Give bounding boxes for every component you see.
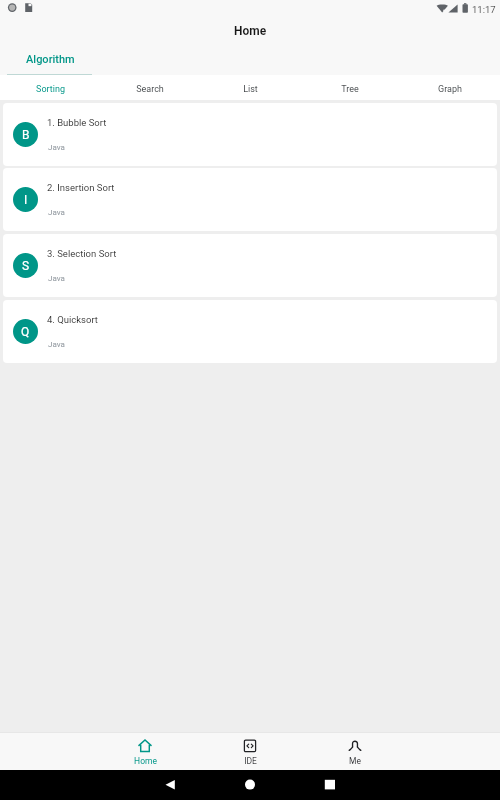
button[interactable]: Q: [3, 300, 497, 363]
staticText: Java: [48, 143, 65, 152]
staticText: Home: [134, 756, 157, 766]
staticText: Java: [48, 340, 65, 349]
staticText: 4. Quicksort: [47, 314, 98, 325]
staticText: Tree: [341, 84, 359, 95]
button[interactable]: Me: [327, 733, 383, 770]
staticText: Algorithm: [26, 53, 75, 66]
button[interactable]: Recent apps: [308, 770, 352, 800]
staticText: Java: [48, 208, 65, 217]
staticText: 2. Insertion Sort: [47, 182, 115, 193]
staticText: List: [243, 84, 258, 95]
staticText: Search: [136, 84, 164, 95]
button[interactable]: Back: [148, 770, 192, 800]
button[interactable]: B: [3, 103, 497, 166]
staticText: S: [22, 259, 30, 273]
staticText: Me: [349, 756, 361, 766]
button[interactable]: List: [200, 75, 300, 100]
staticText: Java: [48, 274, 65, 283]
staticText: 11:17: [472, 4, 496, 15]
staticText: Q: [21, 325, 30, 339]
staticText: IDE: [244, 756, 257, 766]
button[interactable]: Tree: [300, 75, 400, 100]
button[interactable]: S: [3, 234, 497, 297]
button[interactable]: Home: [117, 733, 173, 770]
staticText: B: [22, 128, 30, 142]
button[interactable]: Search: [100, 75, 200, 100]
button[interactable]: Sorting: [0, 75, 100, 100]
button[interactable]: Algorithm: [0, 44, 100, 75]
button[interactable]: Graph: [400, 75, 500, 100]
staticText: 3. Selection Sort: [47, 248, 117, 259]
staticText: Graph: [438, 84, 462, 95]
button[interactable]: Home: [228, 770, 272, 800]
staticText: I: [24, 193, 28, 207]
staticText: Sorting: [36, 84, 65, 95]
button[interactable]: IDE: [222, 733, 278, 770]
button[interactable]: I: [3, 168, 497, 231]
staticText: 1. Bubble Sort: [47, 117, 107, 128]
staticText: Home: [234, 24, 267, 38]
